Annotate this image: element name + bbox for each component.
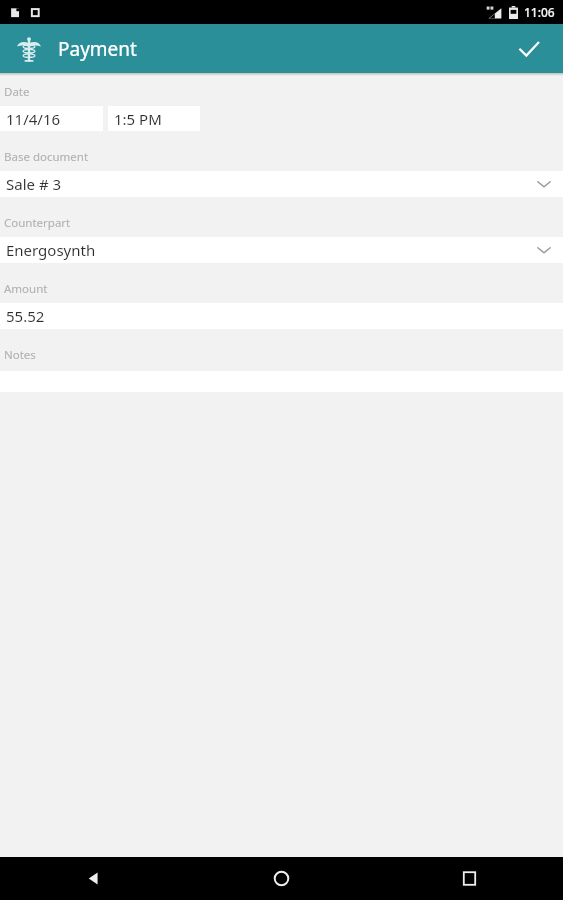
- button[interactable]: Sale # 3: [0, 171, 563, 197]
- button[interactable]: 1:5 PM: [108, 106, 200, 131]
- staticText: 55.52: [6, 306, 45, 326]
- button[interactable]: Home: [187, 857, 375, 900]
- staticText: 1:5 PM: [114, 109, 162, 129]
- staticText: Base document: [4, 149, 89, 165]
- button[interactable]: 55.52: [0, 303, 563, 329]
- button[interactable]: Back: [0, 857, 187, 900]
- staticText: Date: [4, 84, 30, 100]
- staticText: 11:06: [524, 4, 555, 20]
- staticText: Notes: [4, 347, 36, 363]
- staticText: 11/4/16: [6, 109, 61, 129]
- staticText: Energosynth: [6, 240, 96, 260]
- staticText: Payment: [58, 36, 137, 62]
- button[interactable]: Save: [509, 29, 549, 69]
- staticText: Amount: [4, 281, 48, 297]
- button[interactable]: App logo: [14, 34, 44, 64]
- button[interactable]: Energosynth: [0, 237, 563, 263]
- staticText: Counterpart: [4, 215, 71, 231]
- button[interactable]: Recent apps: [375, 857, 563, 900]
- button[interactable]: 11/4/16: [0, 106, 103, 131]
- staticText: Sale # 3: [6, 174, 62, 194]
